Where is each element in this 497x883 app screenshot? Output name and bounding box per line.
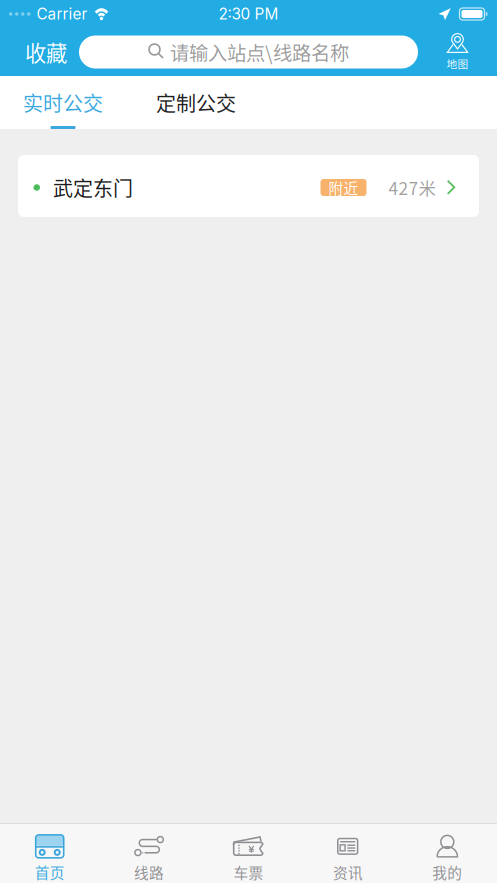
button[interactable]: 首页 (0, 824, 99, 883)
button[interactable]: 请输入站点\线路名称 (79, 35, 418, 68)
staticText: 427米 (388, 175, 435, 200)
staticText: 武定东门 (53, 173, 133, 202)
staticText: 2:30 PM (218, 5, 278, 23)
staticText: 实时公交 (23, 88, 103, 117)
button[interactable]: 我的 (398, 824, 497, 883)
staticText: 收藏 (25, 37, 67, 67)
staticText: 资讯 (333, 861, 363, 883)
button[interactable]: 线路 (99, 824, 199, 883)
staticText: 地图 (446, 56, 468, 71)
button[interactable]: 收藏 (0, 37, 79, 67)
staticText: 首页 (35, 861, 65, 883)
staticText: 我的 (432, 861, 462, 883)
button[interactable]: 车票 (199, 824, 298, 883)
button[interactable]: 地图 (418, 32, 497, 72)
button[interactable]: 定制公交 (126, 76, 266, 129)
staticText: 请输入站点\线路名称 (170, 38, 349, 66)
button[interactable]: 资讯 (298, 824, 398, 883)
staticText: 定制公交 (156, 88, 236, 117)
button[interactable]: 实时公交 (0, 76, 126, 129)
staticText: 附近 (328, 177, 358, 198)
staticText: Carrier (36, 5, 87, 23)
button[interactable]: 武定东门 (18, 155, 479, 217)
staticText: 车票 (233, 861, 263, 883)
staticText: 线路 (134, 861, 164, 883)
